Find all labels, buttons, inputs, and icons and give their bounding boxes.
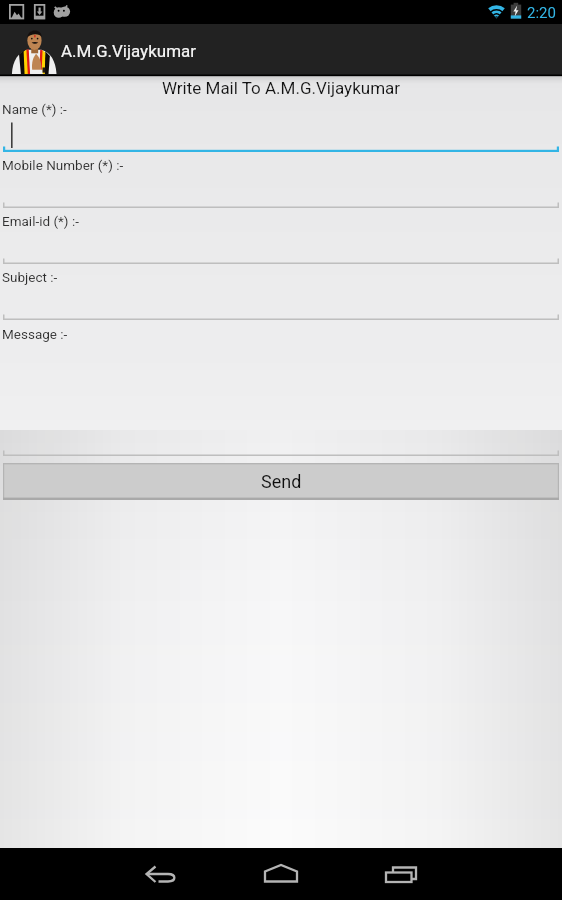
- button[interactable]: [3, 344, 559, 456]
- staticText: Mobile Number (*) :-: [2, 157, 124, 173]
- button[interactable]: Home: [257, 848, 305, 900]
- staticText: A.M.G.Vijaykumar: [61, 41, 197, 61]
- button[interactable]: A.M.G.Vijaykumar: [0, 24, 562, 76]
- button[interactable]: Back: [138, 848, 186, 900]
- button[interactable]: Send: [3, 463, 559, 500]
- staticText: 2:20: [527, 4, 556, 22]
- button[interactable]: [3, 287, 559, 320]
- button[interactable]: [3, 175, 559, 208]
- button[interactable]: [3, 231, 559, 264]
- staticText: Write Mail To A.M.G.Vijaykumar: [0, 78, 562, 98]
- button[interactable]: Recent apps: [378, 848, 426, 900]
- staticText: Name (*) :-: [2, 101, 67, 117]
- staticText: Subject :-: [2, 269, 58, 285]
- staticText: Message :-: [2, 326, 68, 342]
- button[interactable]: [3, 119, 559, 152]
- staticText: Email-id (*) :-: [2, 213, 79, 229]
- staticText: Send: [261, 471, 302, 492]
